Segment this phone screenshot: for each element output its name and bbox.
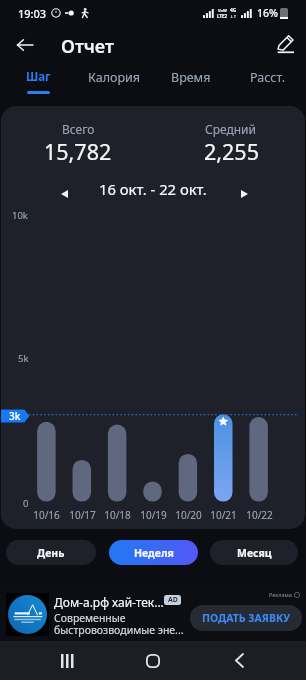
button[interactable]: День	[6, 540, 96, 565]
staticText: 10k	[12, 209, 28, 222]
staticText: VoW	[218, 8, 227, 13]
staticText: LTE2	[217, 13, 228, 19]
staticText: 10/16	[33, 508, 60, 522]
button[interactable]: Previous week	[51, 184, 77, 204]
staticText: Средний	[205, 121, 257, 137]
staticText: 15,782	[44, 137, 112, 166]
staticText: 0	[23, 497, 29, 510]
staticText: 3k	[9, 409, 21, 423]
staticText: 10/22	[246, 508, 273, 522]
staticText: Расст.	[250, 69, 286, 86]
staticText: Неделя	[134, 546, 174, 560]
staticText: Дом-а.рф хай-тек...	[54, 594, 164, 610]
staticText: AD	[168, 595, 178, 605]
button[interactable]: Back	[219, 641, 259, 680]
button[interactable]: Home	[133, 641, 173, 680]
staticText: 10/17	[69, 508, 96, 522]
button[interactable]: ПОДАТЬ ЗАЯВКУ	[190, 605, 302, 631]
staticText: Время	[171, 69, 211, 86]
staticText: День	[37, 546, 65, 560]
staticText: ↓↑	[230, 14, 237, 19]
button[interactable]: Back	[11, 31, 39, 59]
button[interactable]: Recents	[47, 641, 87, 680]
button[interactable]: Edit	[270, 30, 300, 58]
staticText: Шаг	[26, 69, 51, 85]
button[interactable]: Калория	[76, 62, 152, 100]
staticText: 5k	[18, 352, 29, 365]
staticText: Всего	[62, 121, 95, 137]
button[interactable]: Неделя	[109, 540, 198, 565]
staticText: 10/21	[210, 508, 237, 522]
staticText: 10/19	[140, 508, 167, 522]
button[interactable]: Время	[152, 62, 229, 100]
button[interactable]: Шаг	[0, 62, 76, 100]
staticText: 10/18	[104, 508, 131, 522]
staticText: 4G	[230, 7, 237, 14]
staticText: быстровозводимые эне...	[54, 623, 184, 637]
staticText: 19:03	[18, 6, 47, 21]
button[interactable]: Месяц	[210, 540, 298, 565]
staticText: ПОДАТЬ ЗАЯВКУ	[202, 611, 290, 625]
staticText: 16%	[257, 6, 278, 20]
staticText: Отчет	[61, 34, 114, 59]
button[interactable]: Next week	[231, 184, 257, 204]
staticText: 10/20	[175, 508, 202, 522]
staticText: Калория	[88, 69, 140, 86]
staticText: 16 окт. - 22 окт.	[99, 179, 207, 199]
staticText: 2,255	[204, 137, 259, 166]
button[interactable]: Расст.	[229, 62, 306, 100]
staticText: Реклама	[269, 591, 292, 598]
staticText: Месяц	[237, 546, 272, 560]
staticText: Современные	[54, 611, 126, 625]
